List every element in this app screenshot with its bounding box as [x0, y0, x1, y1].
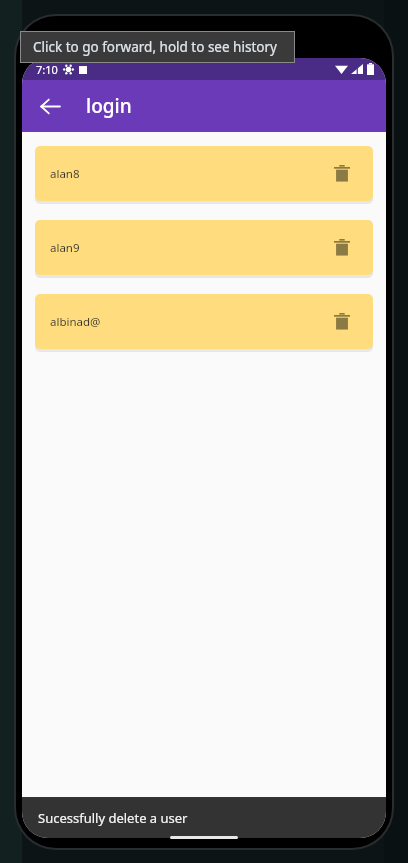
button[interactable]: Delete alan9	[326, 232, 358, 264]
staticText: login	[86, 93, 132, 119]
button[interactable]: alan9	[35, 220, 373, 275]
button[interactable]: Sucessfully delete a user	[22, 797, 386, 838]
button[interactable]: Delete albinad@	[326, 306, 358, 338]
button[interactable]: Delete alan8	[326, 158, 358, 190]
staticText: albinad@	[50, 314, 101, 330]
staticText: Click to go forward, hold to see history	[33, 38, 277, 56]
staticText: Sucessfully delete a user	[38, 809, 188, 827]
staticText: alan8	[50, 166, 80, 182]
button[interactable]: albinad@	[35, 294, 373, 349]
staticText: 7:10	[36, 62, 58, 77]
button[interactable]: alan8	[35, 146, 373, 201]
button[interactable]: Back	[30, 86, 70, 126]
staticText: alan9	[50, 240, 80, 256]
